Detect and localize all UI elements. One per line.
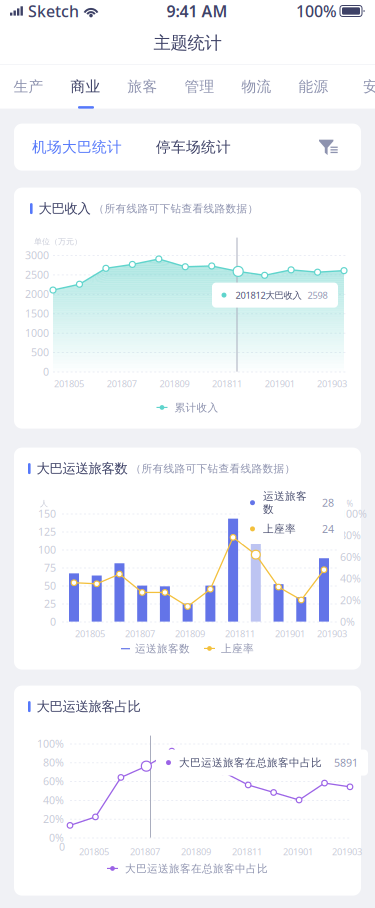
button[interactable]: 机场大巴统计 <box>32 138 122 156</box>
staticText: 大巴运送旅客在总旅客中占比 <box>125 862 268 875</box>
staticText: 201811 <box>225 627 255 640</box>
staticText: 100% <box>296 0 337 22</box>
staticText: 0 <box>59 839 65 854</box>
staticText: 生产 <box>13 78 43 96</box>
staticText: 100 <box>38 542 56 557</box>
staticText: 机场大巴统计 <box>32 138 122 156</box>
staticText: 25 <box>44 596 56 611</box>
staticText: 201809 <box>175 627 205 640</box>
staticText: 上座率 <box>221 642 254 655</box>
staticText: 上座率 <box>263 522 296 535</box>
staticText: 0% <box>49 830 64 845</box>
staticText: 201903 <box>332 845 362 858</box>
staticText: 201809 <box>159 377 189 390</box>
staticText: 主题统计 <box>153 32 221 54</box>
staticText: 125 <box>38 524 56 539</box>
staticText: 1500 <box>25 306 49 320</box>
button[interactable]: 能源 <box>285 65 342 109</box>
staticText: 2598 <box>307 289 327 301</box>
staticText: 201811 <box>212 377 242 390</box>
staticText: 201812大巴收入 <box>235 289 301 301</box>
staticText: 累计收入 <box>174 401 218 414</box>
staticText: 能源 <box>298 78 328 96</box>
staticText: 100% <box>37 736 64 751</box>
button[interactable]: 生产 <box>0 65 57 109</box>
staticText: 运送旅客数 <box>263 490 307 516</box>
staticText: 2000 <box>25 287 49 301</box>
staticText: 28 <box>322 496 334 510</box>
staticText: 40% <box>43 793 64 807</box>
staticText: Sketch <box>28 0 79 22</box>
staticText: 大巴运送旅客数 <box>37 460 128 477</box>
staticText: 201901 <box>275 627 305 640</box>
staticText: 201807 <box>130 845 160 858</box>
staticText: 201903 <box>317 377 347 390</box>
button[interactable]: 管理 <box>171 65 228 109</box>
button[interactable]: 筛选 <box>319 139 339 155</box>
staticText: 大巴运送旅客在总旅客中占比 <box>179 756 322 769</box>
staticText: 201811 <box>232 845 262 858</box>
button[interactable]: 安 <box>342 65 375 109</box>
staticText: 旅客 <box>127 78 157 96</box>
staticText: 管理 <box>184 78 214 96</box>
staticText: 0% <box>340 614 355 629</box>
staticText: 安 <box>363 78 375 96</box>
staticText: 20% <box>43 812 64 826</box>
staticText: 80% <box>340 528 361 542</box>
staticText: 201901 <box>265 377 295 390</box>
staticText: 201809 <box>181 845 211 858</box>
staticText: 50 <box>44 578 56 593</box>
staticText: 大巴运送旅客占比 <box>37 698 141 715</box>
staticText: 2500 <box>25 267 49 282</box>
staticText: 60% <box>43 774 64 788</box>
staticText: 物流 <box>241 78 271 96</box>
staticText: 9:41 AM <box>166 0 227 22</box>
staticText: （所有线路可下钻查看线路数据） <box>94 202 259 215</box>
staticText: 大巴收入 <box>39 200 91 217</box>
staticText: 201807 <box>125 627 155 640</box>
staticText: 3000 <box>25 248 49 262</box>
staticText: 运送旅客数 <box>135 642 190 655</box>
staticText: 40% <box>340 571 361 585</box>
staticText: 0 <box>50 614 56 629</box>
staticText: % <box>346 498 353 509</box>
staticText: 80% <box>43 755 64 769</box>
staticText: 201805 <box>79 845 109 858</box>
button[interactable]: 旅客 <box>114 65 171 109</box>
staticText: 0 <box>43 364 49 379</box>
staticText: 201807 <box>107 377 137 390</box>
staticText: 201901 <box>283 845 313 858</box>
staticText: 人 <box>40 499 48 508</box>
staticText: 5891 <box>334 755 358 770</box>
staticText: 单位（万元） <box>34 237 82 246</box>
button[interactable]: 停车场统计 <box>122 138 231 156</box>
staticText: 1000 <box>25 326 49 340</box>
staticText: 100% <box>340 506 367 521</box>
staticText: 75 <box>44 560 56 575</box>
staticText: 500 <box>31 345 49 359</box>
button[interactable]: 物流 <box>228 65 285 109</box>
staticText: 20% <box>340 593 361 607</box>
staticText: 201805 <box>75 627 105 640</box>
staticText: 150 <box>38 506 56 521</box>
staticText: （所有线路可下钻查看线路数据） <box>131 462 296 475</box>
staticText: 201805 <box>54 377 84 390</box>
staticText: 24 <box>322 522 334 536</box>
staticText: 201903 <box>317 627 347 640</box>
staticText: 商业 <box>70 78 100 96</box>
staticText: 停车场统计 <box>156 138 231 156</box>
staticText: 60% <box>340 550 361 564</box>
button[interactable]: 商业 <box>57 65 114 109</box>
